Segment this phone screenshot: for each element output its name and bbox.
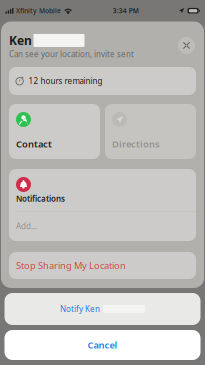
- staticText: Ken: [9, 32, 32, 48]
- staticText: Cancel: [87, 339, 117, 351]
- staticText: Directions: [112, 138, 160, 150]
- button[interactable]: Notifications: [9, 169, 196, 211]
- button[interactable]: Add...: [9, 211, 196, 241]
- staticText: Notifications: [16, 193, 65, 204]
- button[interactable]: 12 hours remaining: [9, 67, 196, 95]
- staticText: Add...: [16, 221, 37, 231]
- button[interactable]: Contact: [9, 104, 100, 159]
- button[interactable]: Stop Sharing My Location: [9, 252, 196, 279]
- button[interactable]: Cancel: [4, 330, 200, 360]
- button[interactable]: Directions: [105, 104, 196, 159]
- button[interactable]: Notify Ken: [4, 293, 200, 325]
- staticText: 12 hours remaining: [28, 76, 102, 86]
- staticText: 3:34 PM: [113, 6, 139, 15]
- staticText: Xfinity Mobile: [16, 6, 61, 15]
- staticText: Stop Sharing My Location: [16, 259, 126, 272]
- staticText: Notify Ken: [60, 304, 100, 314]
- button[interactable]: Close: [178, 37, 195, 54]
- staticText: Can see your location, invite sent: [9, 49, 134, 59]
- staticText: Contact: [16, 138, 52, 150]
